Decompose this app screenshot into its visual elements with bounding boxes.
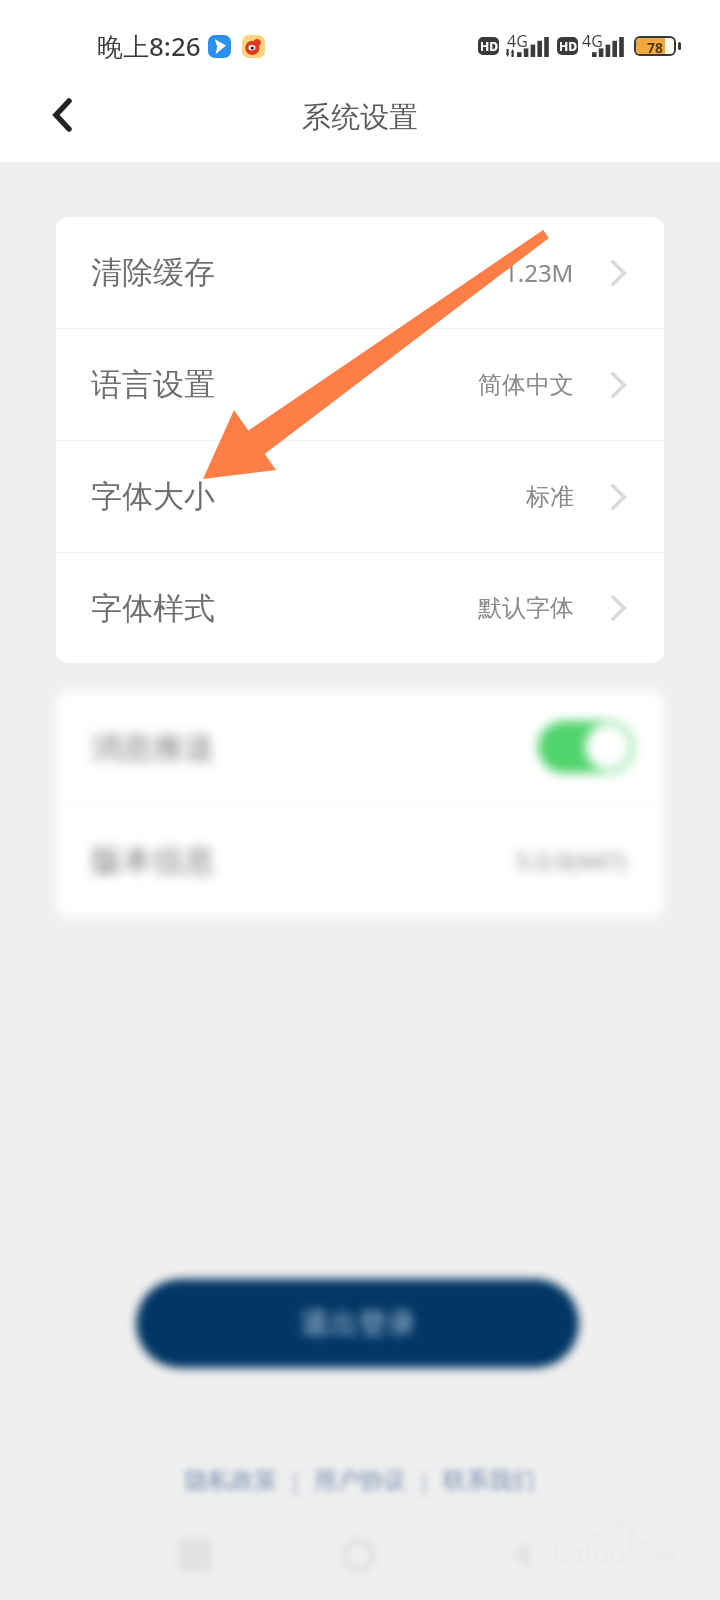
- staticText: 字体样式: [91, 589, 215, 628]
- staticText: 78: [636, 38, 674, 54]
- staticText: 退出登录: [300, 1305, 416, 1342]
- button[interactable]: 主页: [331, 1527, 387, 1583]
- staticText: 字体大小: [91, 477, 215, 516]
- staticText: 1.23M: [504, 256, 574, 289]
- staticText: 4G: [582, 30, 603, 52]
- button[interactable]: 消息推送开关: [538, 721, 634, 773]
- staticText: 晚上8:26: [97, 28, 201, 64]
- staticText: |: [277, 1465, 314, 1496]
- button[interactable]: 用户协议: [314, 1458, 406, 1503]
- button[interactable]: 返回: [29, 82, 95, 148]
- button[interactable]: 清除缓存: [56, 217, 664, 328]
- button[interactable]: 版本信息: [56, 804, 664, 917]
- staticText: 语言设置: [91, 365, 215, 404]
- staticText: 联系我们: [443, 1466, 535, 1495]
- staticText: 消息推送: [91, 728, 215, 767]
- button[interactable]: 隐私政策: [185, 1458, 277, 1503]
- staticText: 5.0.0(447): [516, 844, 626, 877]
- staticText: 清除缓存: [91, 253, 215, 292]
- button[interactable]: 语言设置: [56, 329, 664, 440]
- staticText: HD: [559, 38, 577, 54]
- button[interactable]: 最近任务: [166, 1527, 222, 1583]
- staticText: HD: [480, 38, 498, 54]
- staticText: |: [406, 1465, 443, 1496]
- staticText: 系统设置: [302, 99, 418, 136]
- staticText: 简体中文: [478, 370, 574, 400]
- staticText: 标准: [526, 482, 574, 512]
- button[interactable]: 字体样式: [56, 553, 664, 663]
- button[interactable]: 联系我们: [443, 1458, 535, 1503]
- staticText: 默认字体: [478, 593, 574, 623]
- staticText: 隐私政策: [185, 1466, 277, 1495]
- button[interactable]: 消息推送: [56, 691, 664, 803]
- staticText: 用户协议: [314, 1466, 406, 1495]
- button[interactable]: 退出登录: [136, 1279, 579, 1368]
- button[interactable]: 字体大小: [56, 441, 664, 552]
- staticText: 4G: [507, 30, 528, 52]
- staticText: 版本信息: [91, 841, 215, 880]
